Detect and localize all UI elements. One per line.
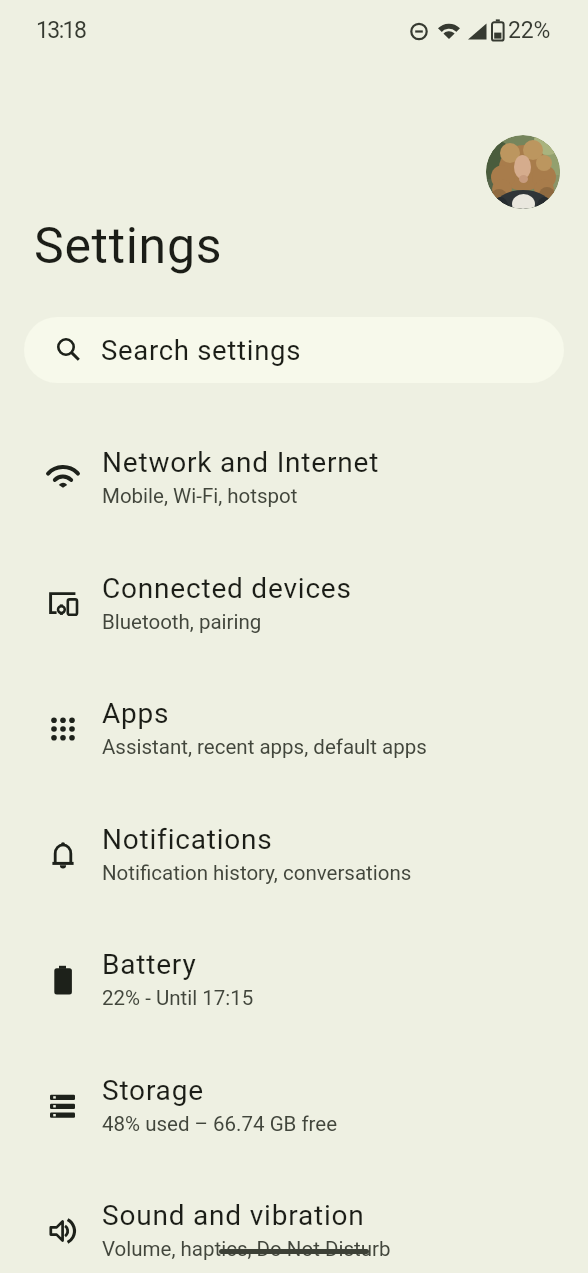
staticText: Apps xyxy=(102,697,170,730)
staticText: 13:18 xyxy=(36,17,86,44)
staticText: Settings xyxy=(34,217,223,276)
button[interactable]: Network and Internet xyxy=(0,420,588,546)
staticText: 22% - Until 17:15 xyxy=(102,986,254,1010)
button[interactable]: Search settings xyxy=(24,317,564,383)
button[interactable]: Battery xyxy=(0,922,588,1048)
button[interactable]: Storage xyxy=(0,1048,588,1174)
button[interactable]: Sound and vibration xyxy=(0,1173,588,1273)
staticText: Sound and vibration xyxy=(102,1199,365,1232)
staticText: Notification history, conversations xyxy=(102,861,412,885)
staticText: Network and Internet xyxy=(102,446,380,479)
button[interactable] xyxy=(486,135,560,209)
staticText: Bluetooth, pairing xyxy=(102,610,262,634)
button[interactable]: Notifications xyxy=(0,797,588,923)
staticText: Assistant, recent apps, default apps xyxy=(102,735,427,759)
staticText: Search settings xyxy=(101,334,302,366)
staticText: 48% used – 66.74 GB free xyxy=(102,1112,338,1136)
staticText: 22% xyxy=(508,17,551,44)
staticText: Connected devices xyxy=(102,572,352,605)
staticText: Battery xyxy=(102,948,197,981)
staticText: Storage xyxy=(102,1074,204,1107)
staticText: Volume, haptics, Do Not Disturb xyxy=(102,1237,391,1261)
button[interactable]: Apps xyxy=(0,671,588,797)
button[interactable]: Connected devices xyxy=(0,546,588,672)
staticText: Mobile, Wi-Fi, hotspot xyxy=(102,484,298,508)
staticText: Notifications xyxy=(102,823,273,856)
